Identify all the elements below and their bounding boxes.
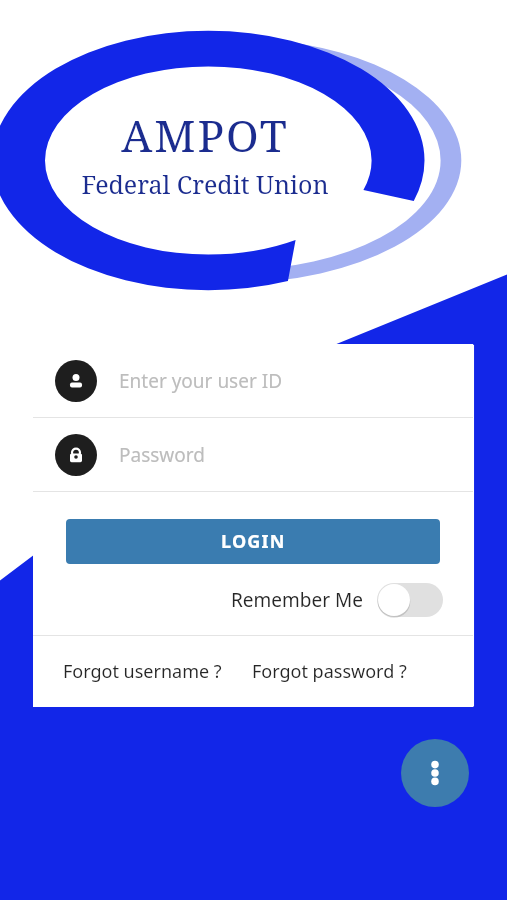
staticText: Forgot password ?	[252, 659, 407, 684]
button[interactable]: Forgot username ?	[33, 651, 230, 692]
button[interactable]: Forgot password ?	[244, 651, 415, 692]
staticText: Forgot username ?	[63, 659, 222, 684]
button[interactable]: Enter your user ID	[33, 344, 473, 417]
staticText: Enter your user ID	[119, 368, 283, 394]
staticText: Password	[119, 442, 205, 468]
staticText: Federal Credit Union	[81, 167, 329, 201]
staticText: LOGIN	[221, 529, 286, 554]
staticText: Remember Me	[231, 587, 363, 613]
button[interactable]: Password	[33, 418, 473, 491]
button[interactable]: More options	[401, 739, 469, 807]
button[interactable]: Remember Me	[33, 564, 473, 635]
staticText: AMPOT	[121, 105, 289, 165]
button[interactable]: LOGIN	[66, 519, 440, 564]
